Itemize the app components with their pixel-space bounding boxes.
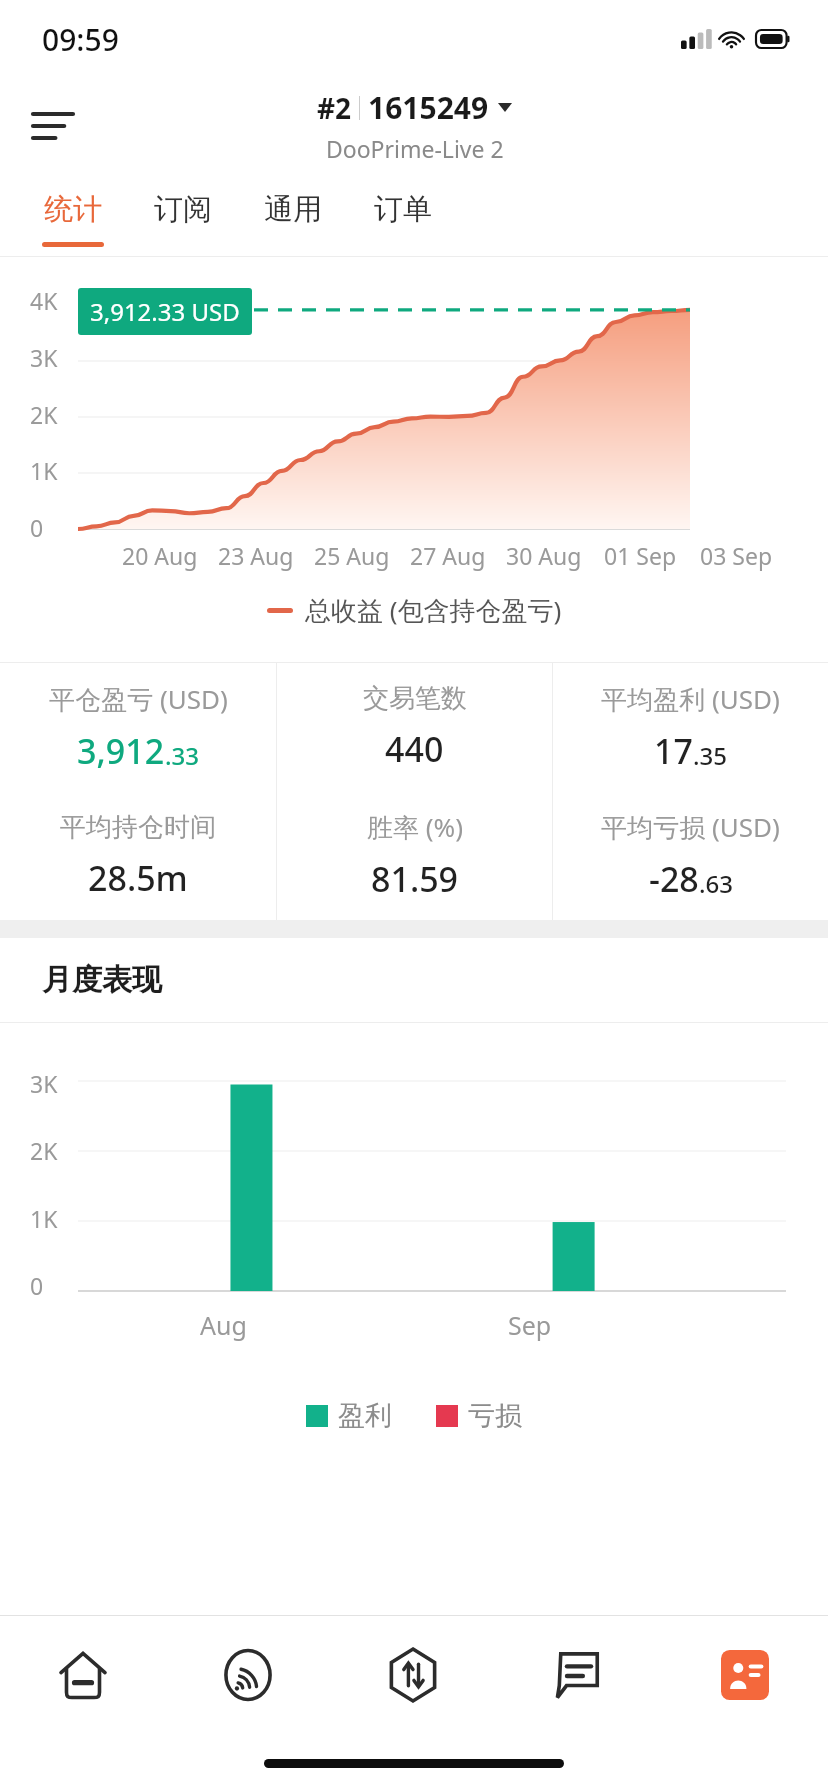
staticText: 3K bbox=[30, 1068, 58, 1099]
staticText: 总收益 (包含持仓盈亏) bbox=[305, 592, 562, 628]
staticText: 1615249 bbox=[368, 87, 489, 128]
staticText: 3K bbox=[30, 342, 58, 373]
staticText: 亏损 bbox=[468, 1399, 522, 1433]
staticText: 25 Aug bbox=[314, 540, 390, 571]
button[interactable]: Menu bbox=[22, 95, 84, 157]
staticText: 28.5m bbox=[88, 855, 188, 901]
button[interactable]: 订单 bbox=[348, 173, 458, 256]
staticText: 0 bbox=[30, 1270, 44, 1301]
staticText: 订单 bbox=[374, 191, 432, 228]
staticText: 统计 bbox=[44, 191, 102, 228]
staticText: 01 Sep bbox=[604, 540, 677, 571]
staticText: 平均持仓时间 bbox=[60, 811, 216, 844]
staticText: 胜率 (%) bbox=[367, 809, 463, 845]
button[interactable]: 平均亏损 (USD) bbox=[553, 791, 828, 920]
staticText: 81.59 bbox=[371, 856, 459, 902]
staticText: 20 Aug bbox=[122, 540, 198, 571]
staticText: 440 bbox=[385, 726, 444, 772]
staticText: .35 bbox=[693, 739, 727, 772]
staticText: 03 Sep bbox=[700, 540, 773, 571]
staticText: 1K bbox=[30, 455, 58, 486]
staticText: 2K bbox=[30, 399, 58, 430]
staticText: .33 bbox=[165, 739, 199, 772]
button[interactable]: #2 bbox=[317, 87, 512, 164]
staticText: #2 bbox=[317, 89, 352, 127]
staticText: DooPrime-Live 2 bbox=[326, 133, 504, 164]
staticText: .63 bbox=[699, 867, 733, 900]
button[interactable]: 平仓盈亏 (USD) bbox=[0, 663, 276, 791]
staticText: 订阅 bbox=[154, 191, 212, 228]
staticText: 0 bbox=[30, 512, 44, 543]
button[interactable]: 平均持仓时间 bbox=[0, 791, 276, 920]
staticText: 09:59 bbox=[42, 19, 119, 60]
staticText: -28 bbox=[649, 856, 699, 902]
button[interactable]: 统计 bbox=[18, 173, 128, 256]
button[interactable]: Profile bbox=[662, 1616, 828, 1734]
staticText: 4K bbox=[30, 285, 58, 316]
staticText: 平均盈利 (USD) bbox=[601, 681, 780, 717]
staticText: Aug bbox=[200, 1308, 247, 1342]
staticText: 27 Aug bbox=[410, 540, 486, 571]
staticText: 23 Aug bbox=[218, 540, 294, 571]
button[interactable]: 通用 bbox=[238, 173, 348, 256]
staticText: 平仓盈亏 (USD) bbox=[49, 681, 228, 717]
button[interactable]: Signals bbox=[165, 1616, 330, 1734]
staticText: 2K bbox=[30, 1135, 58, 1166]
staticText: 30 Aug bbox=[506, 540, 582, 571]
button[interactable]: 平均盈利 (USD) bbox=[553, 663, 828, 791]
staticText: 平均亏损 (USD) bbox=[601, 809, 780, 845]
button[interactable]: 交易笔数 bbox=[277, 663, 552, 791]
button[interactable]: 胜率 (%) bbox=[277, 791, 552, 920]
button[interactable]: Messages bbox=[496, 1616, 662, 1734]
button[interactable]: 订阅 bbox=[128, 173, 238, 256]
staticText: 月度表现 bbox=[42, 961, 162, 999]
staticText: 3,912 bbox=[77, 728, 165, 774]
button[interactable]: Trade bbox=[330, 1616, 496, 1734]
staticText: 通用 bbox=[264, 191, 322, 228]
staticText: 盈利 bbox=[338, 1399, 392, 1433]
staticText: 17 bbox=[654, 728, 693, 774]
staticText: Sep bbox=[508, 1308, 552, 1342]
staticText: 交易笔数 bbox=[363, 682, 467, 715]
button[interactable]: Home bbox=[0, 1616, 165, 1734]
staticText: 1K bbox=[30, 1203, 58, 1234]
staticText: 3,912.33 USD bbox=[90, 295, 240, 328]
